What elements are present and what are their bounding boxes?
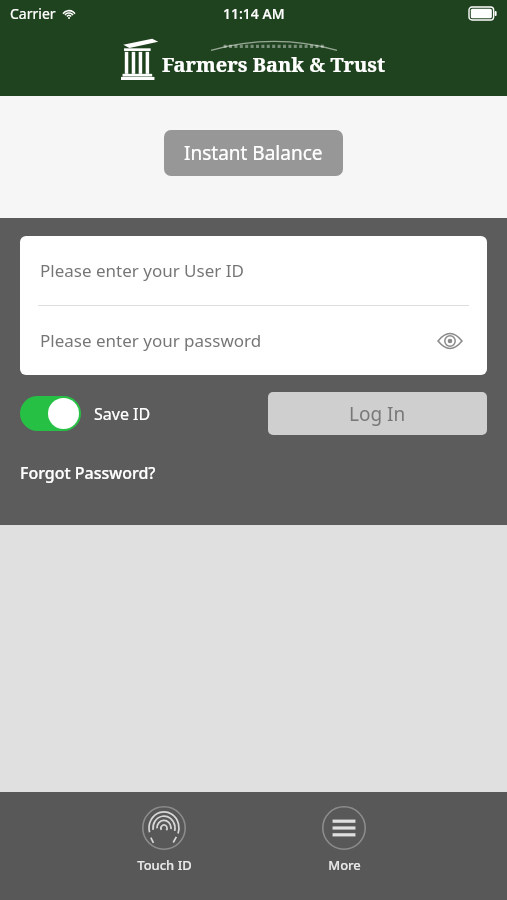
button[interactable]: Forgot Password?: [20, 462, 156, 484]
staticText: Log In: [349, 401, 406, 427]
button[interactable]: Log In: [268, 392, 487, 435]
button[interactable]: Please enter your password: [20, 306, 487, 375]
staticText: Please enter your User ID: [40, 259, 244, 282]
staticText: More: [328, 856, 361, 874]
button[interactable]: More: [254, 806, 434, 874]
staticText: Farmers Bank & Trust: [162, 51, 386, 78]
staticText: Save ID: [94, 403, 151, 425]
staticText: Forgot Password?: [20, 462, 156, 484]
button[interactable]: Touch ID: [74, 806, 254, 874]
button[interactable]: Save ID: [20, 396, 151, 431]
button[interactable]: Please enter your User ID: [20, 236, 487, 305]
staticText: Carrier: [10, 4, 56, 23]
staticText: Instant Balance: [184, 140, 323, 166]
staticText: Touch ID: [137, 856, 192, 874]
staticText: Please enter your password: [40, 329, 262, 352]
button[interactable]: Instant Balance: [164, 130, 343, 176]
staticText: 11:14 AM: [223, 4, 285, 23]
button[interactable]: Show password: [433, 324, 467, 358]
